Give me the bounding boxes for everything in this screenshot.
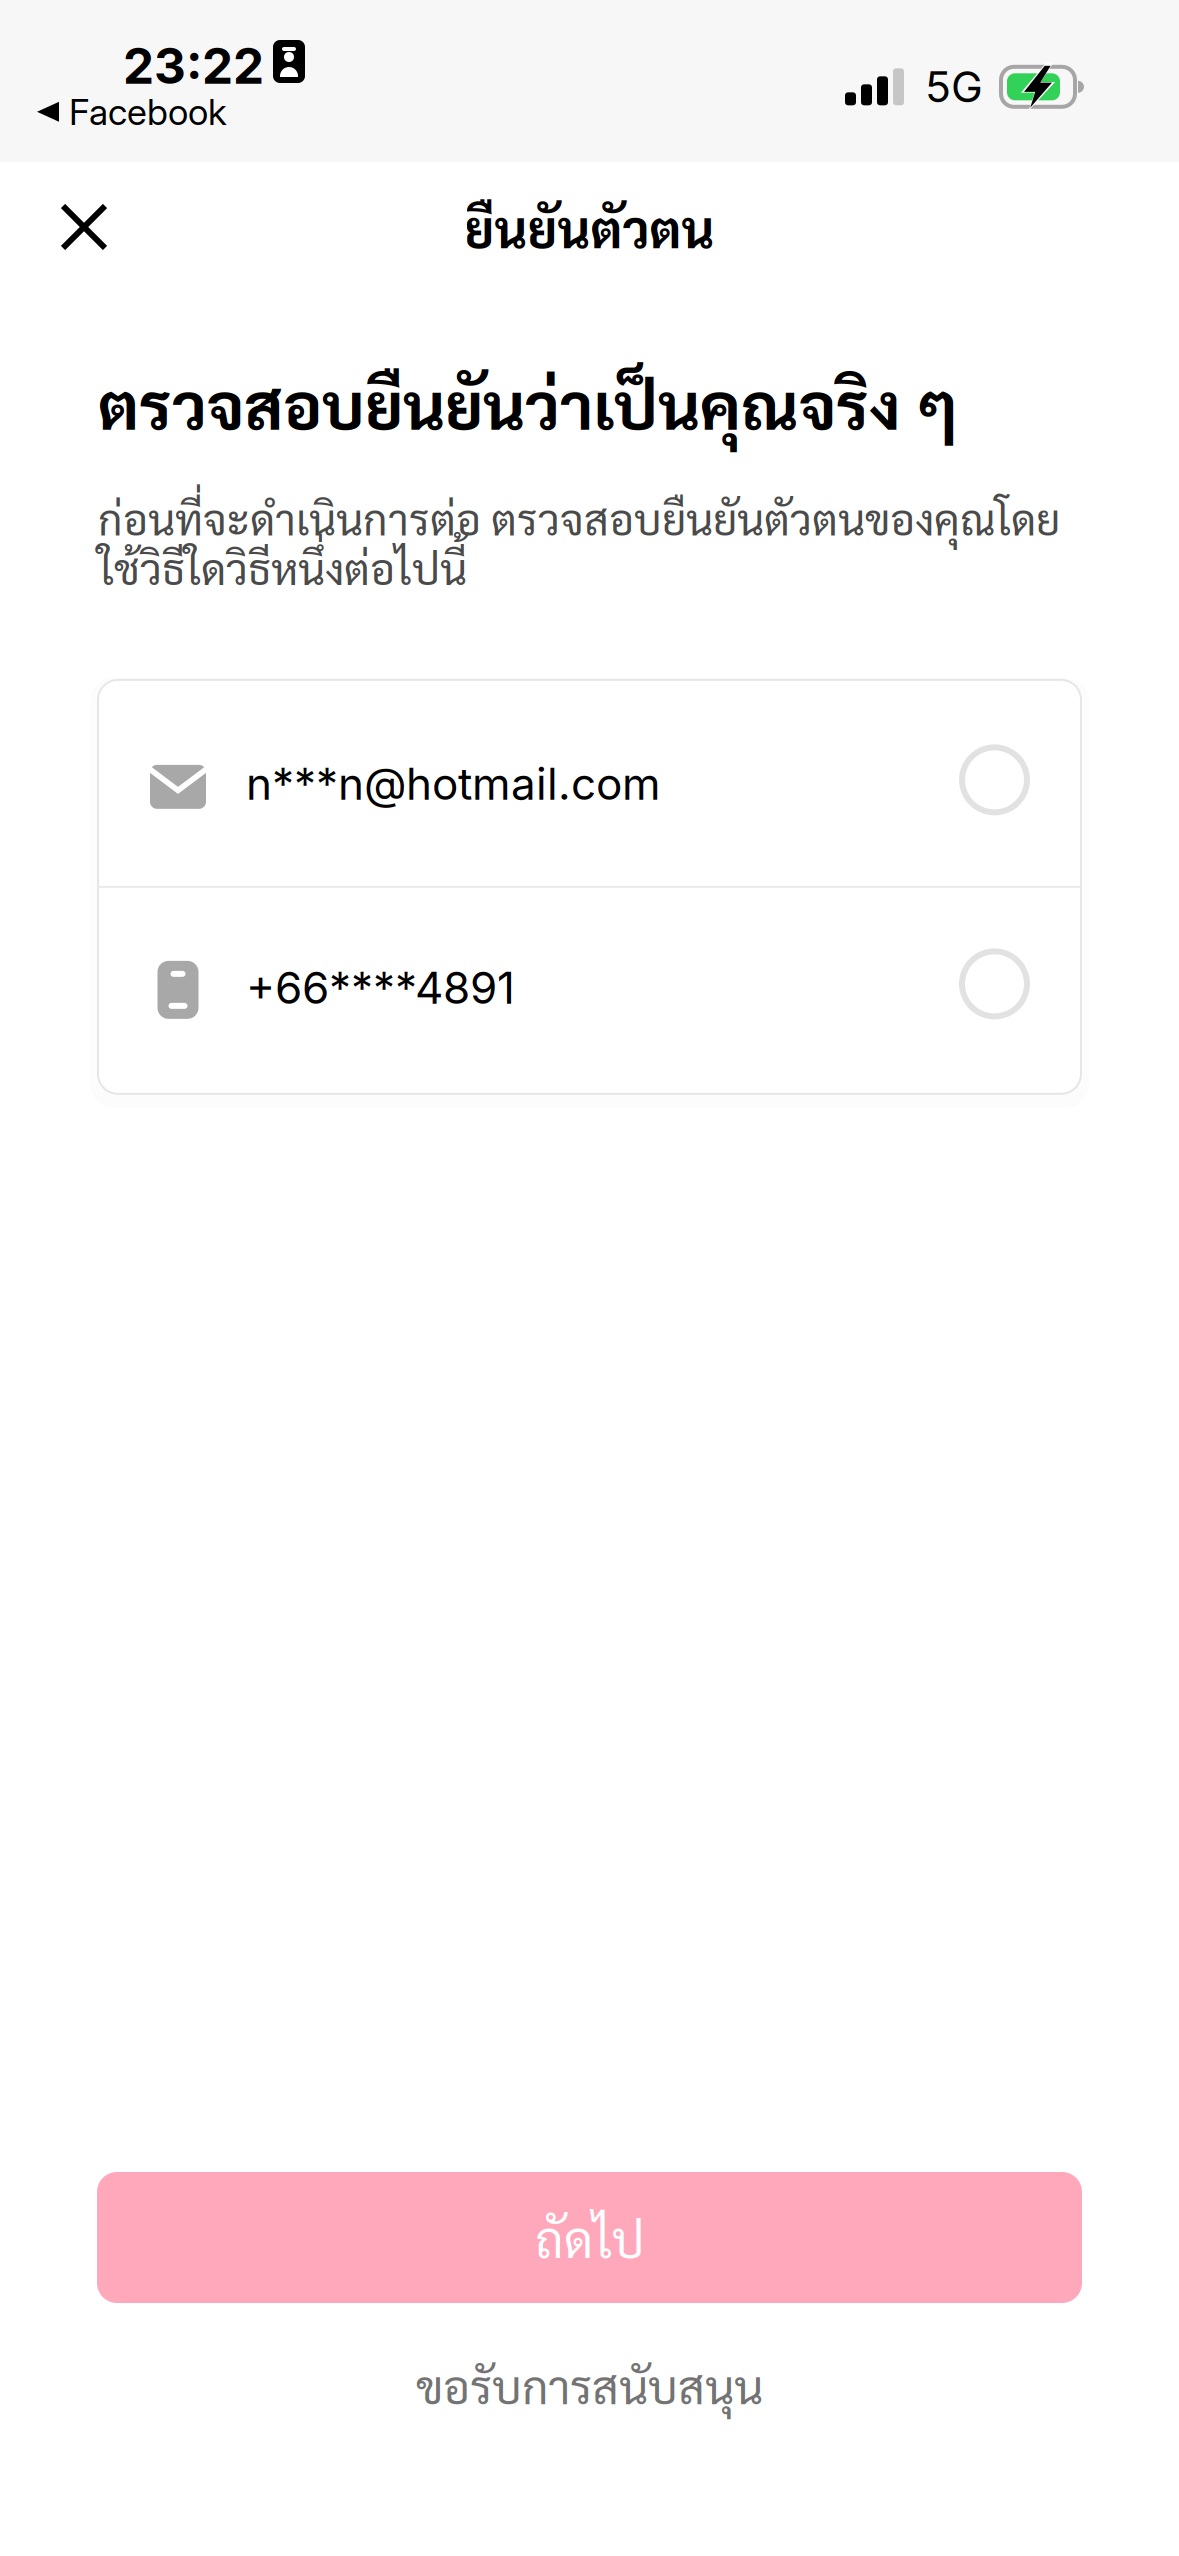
staticText: n***n@hotmail.com bbox=[246, 757, 661, 810]
staticText: ตรวจสอบยืนยันว่าเป็นคุณจริง ๆ bbox=[98, 360, 959, 445]
staticText: ก่อนที่จะดำเนินการต่อ ตรวจสอบยืนยันตัวตน… bbox=[98, 490, 1060, 595]
staticText: ขอรับการสนับสนุน bbox=[416, 2355, 763, 2415]
button[interactable]: +66****4891 bbox=[98, 888, 1081, 1094]
button[interactable]: n***n@hotmail.com bbox=[98, 680, 1081, 886]
staticText: +66****4891 bbox=[246, 961, 515, 1014]
button[interactable]: ถัดไป bbox=[97, 2172, 1082, 2303]
staticText: Facebook bbox=[69, 90, 227, 134]
button[interactable]: ขอรับการสนับสนุน bbox=[0, 2303, 1179, 2440]
button[interactable]: Close bbox=[39, 182, 129, 272]
staticText: ถัดไป bbox=[535, 2205, 644, 2269]
staticText: 23:22 bbox=[123, 36, 264, 96]
staticText: 5G bbox=[925, 61, 983, 113]
staticText: ยืนยันตัวตน bbox=[464, 194, 714, 260]
